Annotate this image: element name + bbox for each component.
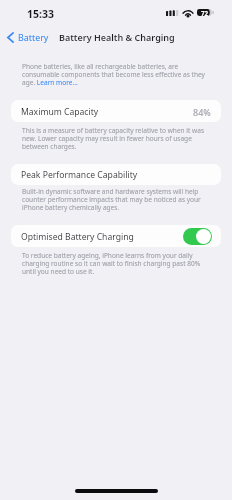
button[interactable]: Peak Performance Capability xyxy=(11,164,221,185)
staticText: To reduce battery ageing, iPhone learns … xyxy=(22,251,212,276)
staticText: Built-in dynamic software and hardware s… xyxy=(22,187,212,212)
staticText: 15:33 xyxy=(27,7,54,21)
staticText: 72 xyxy=(201,9,209,17)
button[interactable]: Battery xyxy=(4,29,52,45)
staticText: Peak Performance Capability xyxy=(21,169,138,181)
staticText: Optimised Battery Charging xyxy=(21,231,134,243)
staticText: This is a measure of battery capacity re… xyxy=(22,126,212,151)
staticText: 84% xyxy=(193,106,211,118)
staticText: Phone batteries, like all rechargeable b… xyxy=(22,62,212,87)
staticText: Maximum Capacity xyxy=(21,106,99,118)
button[interactable]: Optimised Battery Charging xyxy=(11,225,221,247)
staticText: Battery Health & Charging xyxy=(59,31,175,43)
staticText: Battery xyxy=(18,31,49,43)
button[interactable]: Optimised Battery Charging toggle xyxy=(183,228,212,245)
button[interactable]: Maximum Capacity xyxy=(11,100,221,122)
